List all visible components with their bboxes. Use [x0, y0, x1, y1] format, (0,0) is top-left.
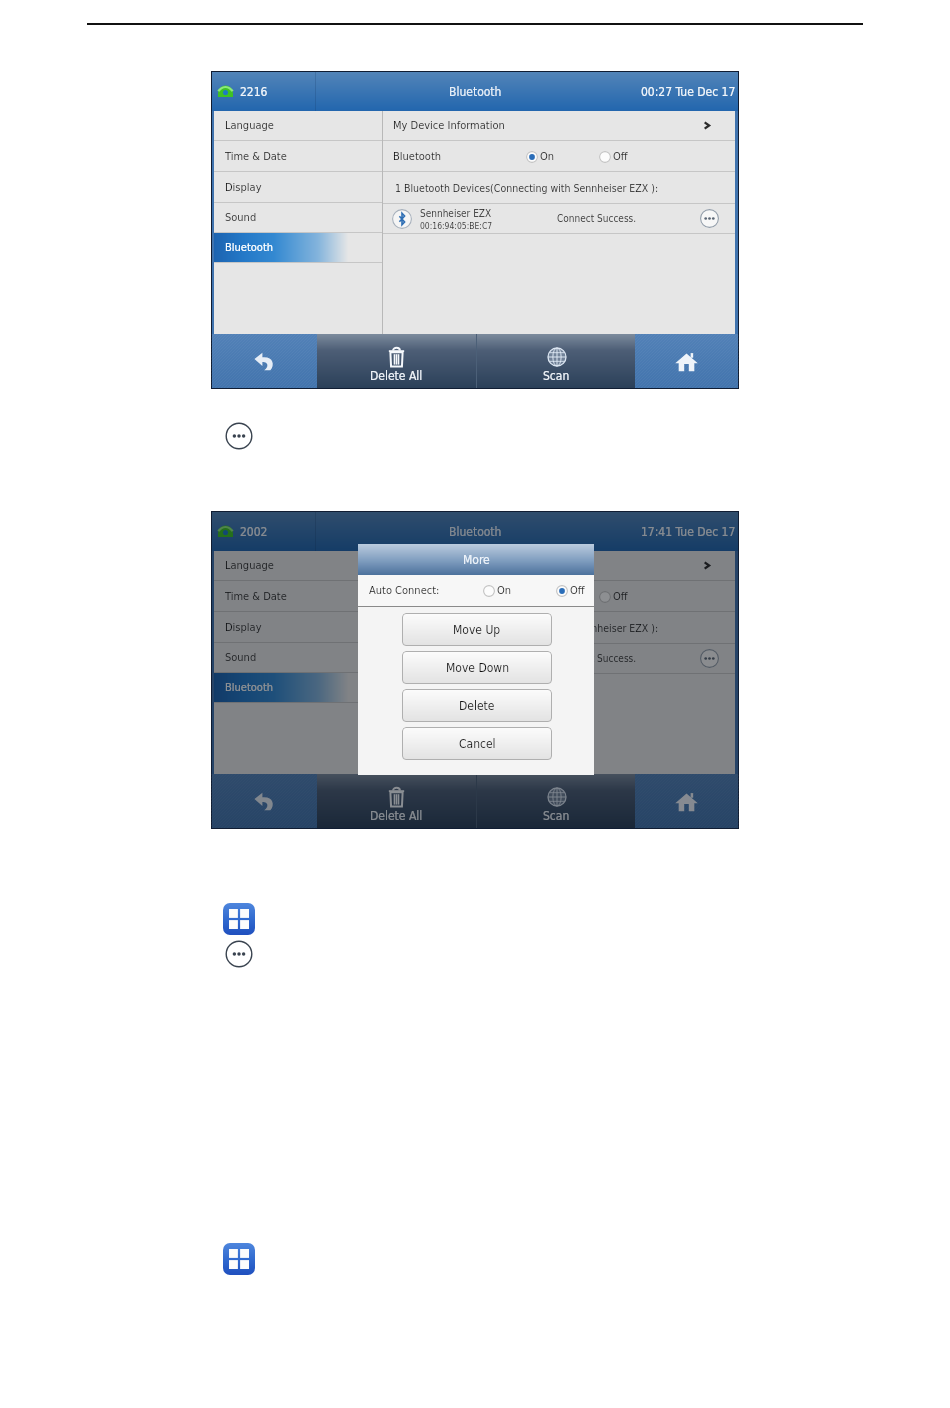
button[interactable]: More	[225, 422, 253, 450]
button[interactable]: Language	[214, 551, 382, 580]
button[interactable]: Back	[212, 774, 317, 828]
staticText: Off	[570, 584, 585, 597]
staticText: Bluetooth	[393, 150, 442, 163]
staticText: Bluetooth	[449, 85, 502, 99]
button[interactable]: Bluetooth	[214, 673, 382, 702]
staticText: More	[463, 553, 490, 567]
staticText: Language	[225, 559, 274, 572]
button[interactable]: Scan	[477, 334, 635, 388]
button[interactable]: Delete All	[317, 774, 476, 828]
staticText: Move Up	[453, 623, 501, 637]
staticText: Bluetooth	[393, 590, 442, 603]
button[interactable]: Home	[635, 334, 738, 388]
button[interactable]: More options	[700, 209, 719, 228]
staticText: Language	[225, 119, 274, 132]
button[interactable]: Move Up	[402, 613, 552, 646]
staticText: Auto Connect:	[369, 584, 440, 597]
button[interactable]: Home	[635, 774, 738, 828]
staticText: 2002	[240, 525, 268, 539]
staticText: My Device Information	[393, 119, 505, 132]
staticText: Display	[225, 621, 262, 634]
staticText: Cancel	[459, 737, 496, 751]
button[interactable]: Menu	[223, 1243, 255, 1275]
staticText: Display	[225, 181, 262, 194]
staticText: Off	[613, 150, 628, 163]
staticText: Connect Success.	[557, 653, 637, 665]
button[interactable]: Time & Date	[214, 581, 382, 611]
button[interactable]: Scan	[477, 774, 635, 828]
staticText: Delete	[459, 699, 495, 713]
staticText: 17:41 Tue Dec 17	[641, 525, 736, 539]
staticText: Bluetooth	[449, 525, 502, 539]
button[interactable]: Language	[214, 111, 382, 140]
staticText: Sound	[225, 211, 257, 224]
button[interactable]: Time & Date	[214, 141, 382, 171]
staticText: 2216	[240, 85, 268, 99]
staticText: Off	[613, 590, 628, 603]
button[interactable]: More	[225, 940, 253, 968]
button[interactable]: More options	[700, 649, 719, 668]
button[interactable]: Sound	[214, 203, 382, 232]
button[interactable]: Move Down	[402, 651, 552, 684]
staticText: 00:27 Tue Dec 17	[641, 85, 736, 99]
button[interactable]: Back	[212, 334, 317, 388]
button[interactable]: Delete All	[317, 334, 476, 388]
staticText: My Device Information	[393, 559, 505, 572]
staticText: Time & Date	[225, 590, 287, 603]
staticText: Sennheiser EZX	[420, 648, 492, 660]
staticText: 1 Bluetooth Devices(Connecting with Senn…	[395, 622, 659, 634]
staticText: Delete All	[370, 369, 423, 383]
button[interactable]: Display	[214, 172, 382, 202]
button[interactable]: Bluetooth	[214, 233, 382, 262]
button[interactable]: Delete	[402, 689, 552, 722]
staticText: Bluetooth	[225, 681, 274, 694]
staticText: 1 Bluetooth Devices(Connecting with Senn…	[395, 182, 659, 194]
staticText: Delete All	[370, 809, 423, 823]
staticText: Scan	[543, 809, 570, 823]
staticText: Sound	[225, 651, 257, 664]
staticText: On	[497, 584, 512, 597]
button[interactable]: Cancel	[402, 727, 552, 760]
staticText: 00:16:94:05:BE:C7	[420, 661, 493, 671]
staticText: Time & Date	[225, 150, 287, 163]
button[interactable]: Display	[214, 612, 382, 642]
staticText: On	[540, 150, 555, 163]
button[interactable]: Menu	[223, 903, 255, 935]
staticText: Move Down	[446, 661, 509, 675]
staticText: 00:16:94:05:BE:C7	[420, 221, 493, 231]
button[interactable]: Sound	[214, 643, 382, 672]
staticText: Bluetooth	[225, 241, 274, 254]
staticText: Scan	[543, 369, 570, 383]
staticText: Connect Success.	[557, 213, 637, 225]
staticText: Sennheiser EZX	[420, 208, 492, 220]
